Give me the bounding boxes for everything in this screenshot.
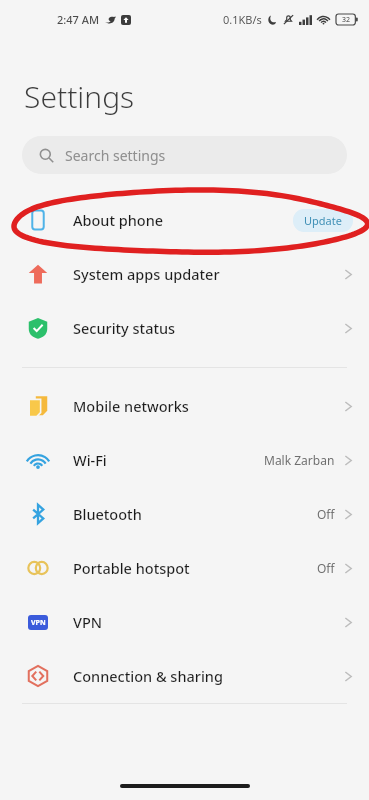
staticText: Update [304, 213, 342, 228]
staticText: Search settings [65, 146, 166, 165]
staticText: 32 [342, 15, 351, 25]
button[interactable]: About phone [0, 193, 369, 247]
button[interactable]: System apps updater [0, 247, 369, 301]
staticText: Mobile networks [73, 396, 344, 416]
button[interactable]: Security status [0, 301, 369, 355]
button[interactable]: Connection & sharing [0, 649, 369, 703]
button[interactable]: Portable hotspot [0, 541, 369, 595]
staticText: Malk Zarban [264, 452, 335, 468]
button[interactable]: Search settings [22, 136, 347, 174]
staticText: Portable hotspot [73, 558, 317, 578]
staticText: 2:47 AM [57, 12, 100, 27]
staticText: System apps updater [73, 264, 344, 284]
staticText: Settings [24, 76, 135, 117]
button[interactable]: Bluetooth [0, 487, 369, 541]
button[interactable]: VPN [0, 595, 369, 649]
staticText: Wi-Fi [73, 450, 264, 470]
staticText: Bluetooth [73, 504, 317, 524]
staticText: Off [317, 560, 335, 576]
staticText: Security status [73, 318, 344, 338]
button[interactable]: Wi-Fi [0, 433, 369, 487]
staticText: Connection & sharing [73, 666, 344, 686]
button[interactable]: Mobile networks [0, 379, 369, 433]
staticText: 0.1KB/s [223, 12, 262, 27]
staticText: About phone [73, 210, 293, 230]
staticText: Off [317, 506, 335, 522]
staticText: VPN [31, 618, 46, 628]
button[interactable]: Update [293, 209, 353, 232]
staticText: VPN [73, 612, 344, 632]
